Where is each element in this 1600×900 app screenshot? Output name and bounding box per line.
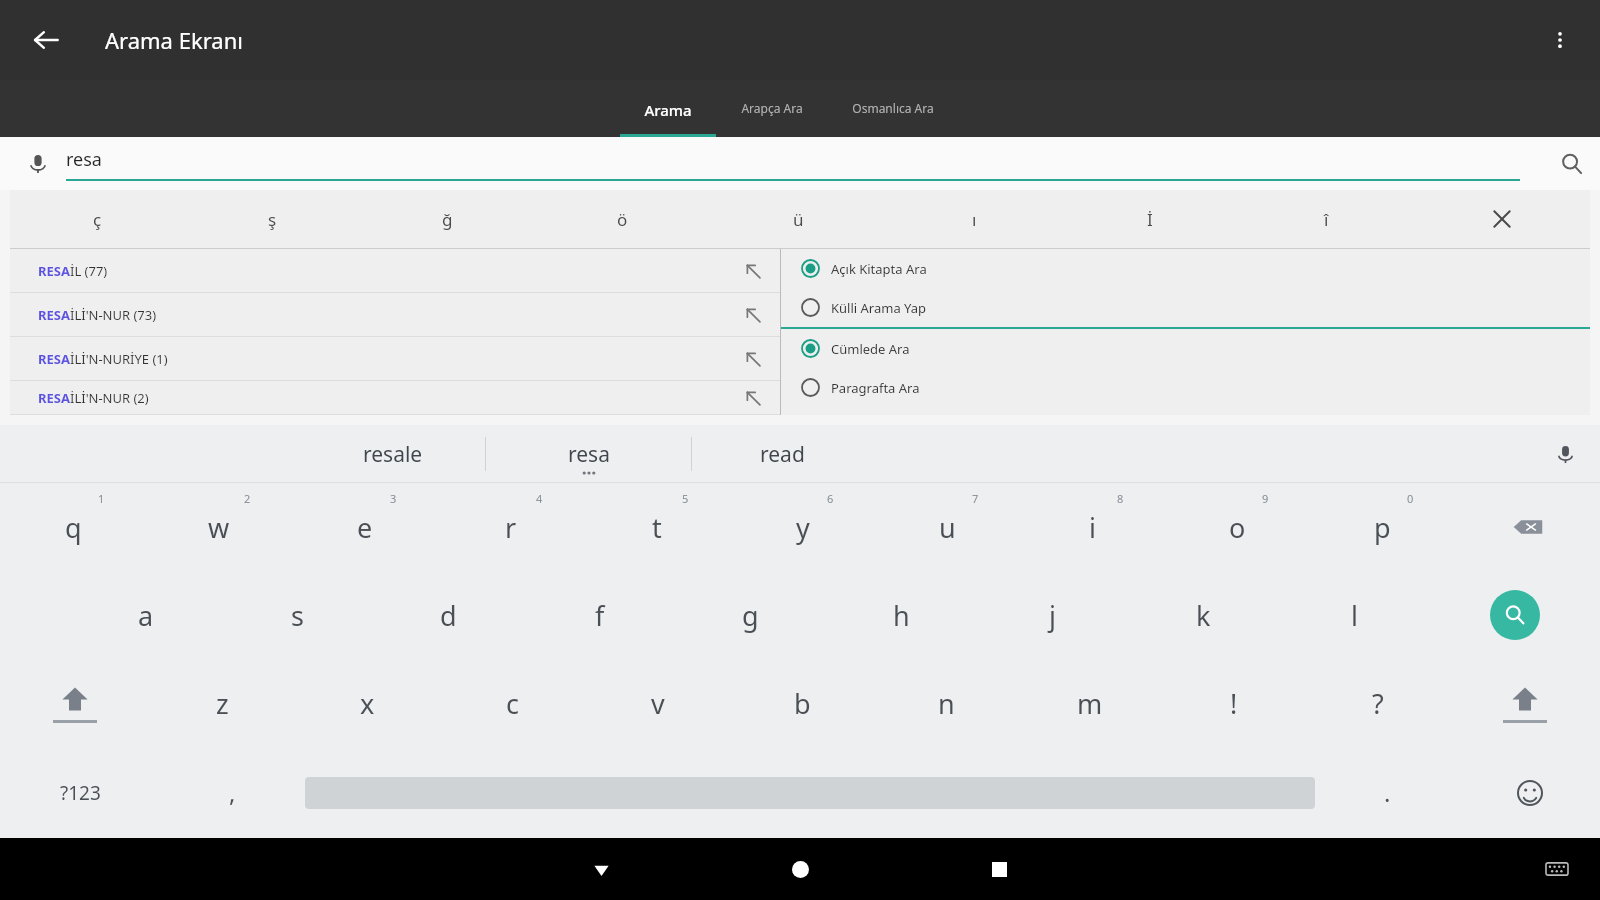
button[interactable]: a (70, 571, 222, 659)
button[interactable]: ? (1306, 659, 1450, 747)
button[interactable]: Voice search (20, 146, 56, 182)
staticText: İLİ'N-NURİYE (1) (70, 350, 168, 368)
button[interactable]: s (222, 571, 373, 659)
staticText: v (651, 685, 665, 722)
button[interactable]: î (1238, 190, 1414, 248)
staticText: RESA (38, 389, 70, 407)
staticText: e (357, 509, 373, 546)
button[interactable]: Shift (0, 659, 150, 747)
button[interactable]: Period (1315, 747, 1460, 838)
button[interactable]: Emoji (1460, 747, 1600, 838)
button[interactable]: y (730, 483, 875, 571)
button[interactable]: Arapça Ara (716, 80, 828, 137)
staticText: ç (93, 208, 102, 231)
button[interactable]: o (1165, 483, 1310, 571)
button[interactable]: Comma (160, 747, 305, 838)
staticText: c (506, 685, 519, 722)
staticText: n (938, 685, 955, 722)
button[interactable]: Change keyboard (1532, 844, 1582, 894)
button[interactable]: RESA (10, 249, 780, 292)
button[interactable]: k (1128, 571, 1279, 659)
button[interactable]: ö (535, 190, 710, 248)
staticText: f (595, 597, 605, 634)
button[interactable]: Shift (1450, 659, 1600, 747)
button[interactable]: Back (573, 841, 629, 897)
button[interactable]: h (826, 571, 977, 659)
button[interactable]: resale (300, 425, 485, 483)
staticText: read (760, 440, 805, 469)
button[interactable]: c (440, 659, 585, 747)
staticText: m (1077, 685, 1103, 722)
button[interactable]: ü (710, 190, 886, 248)
button[interactable]: d (373, 571, 524, 659)
button[interactable]: read (692, 425, 872, 483)
button[interactable]: resa (486, 425, 691, 483)
button[interactable]: j (977, 571, 1128, 659)
staticText: , (229, 776, 236, 809)
button[interactable]: b (730, 659, 874, 747)
button[interactable]: w (146, 483, 292, 571)
staticText: j (1049, 597, 1056, 634)
button[interactable]: f (524, 571, 675, 659)
staticText: Açık Kitapta Ara (831, 260, 927, 278)
staticText: resale (363, 440, 423, 469)
staticText: ı (972, 208, 977, 231)
button[interactable]: u (875, 483, 1020, 571)
button[interactable]: RESA (10, 381, 780, 414)
button[interactable]: l (1279, 571, 1430, 659)
staticText: İLİ'N-NUR (73) (70, 306, 157, 324)
button[interactable]: Recent apps (971, 841, 1027, 897)
button[interactable]: Paragrafta Ara (781, 368, 1590, 407)
button[interactable]: t (584, 483, 730, 571)
button[interactable]: ı (886, 190, 1062, 248)
button[interactable]: More options (1538, 18, 1582, 62)
staticText: ş (268, 208, 277, 231)
button[interactable]: Açık Kitapta Ara (781, 249, 1590, 288)
staticText: 6 (827, 491, 834, 506)
button[interactable]: Search (1430, 571, 1600, 659)
staticText: s (291, 597, 304, 634)
button[interactable]: Cümlede Ara (781, 329, 1590, 368)
button[interactable]: q (0, 483, 146, 571)
button[interactable]: Backspace (1455, 483, 1600, 571)
button[interactable]: Search (1552, 144, 1592, 184)
staticText: z (216, 685, 229, 722)
button[interactable]: Close (1414, 190, 1590, 248)
button[interactable]: z (150, 659, 295, 747)
button[interactable]: Arama (620, 80, 716, 137)
button[interactable]: ğ (360, 190, 535, 248)
button[interactable]: ş (185, 190, 360, 248)
button[interactable]: RESA (10, 337, 780, 380)
button[interactable]: RESA (10, 293, 780, 336)
staticText: u (939, 509, 956, 546)
staticText: ü (793, 208, 804, 231)
button[interactable]: Back (22, 16, 70, 64)
button[interactable]: Home (772, 841, 828, 897)
button[interactable]: Osmanlıca Ara (828, 80, 958, 137)
button[interactable]: Voice input (1530, 425, 1600, 483)
staticText: Cümlede Ara (831, 340, 910, 358)
staticText: 5 (682, 491, 689, 506)
button[interactable]: m (1018, 659, 1162, 747)
button[interactable]: x (295, 659, 440, 747)
staticText: 4 (536, 491, 543, 506)
button[interactable]: İ (1062, 190, 1238, 248)
button[interactable]: Space (305, 747, 1315, 838)
button[interactable]: p (1310, 483, 1455, 571)
staticText: . (1384, 776, 1391, 809)
button[interactable]: i (1020, 483, 1165, 571)
button[interactable]: ! (1162, 659, 1306, 747)
button[interactable]: Külli Arama Yap (781, 288, 1590, 327)
button[interactable]: ?123 (0, 747, 160, 838)
staticText: Arama (644, 100, 692, 120)
button[interactable]: r (438, 483, 584, 571)
button[interactable]: e (292, 483, 438, 571)
button[interactable]: v (585, 659, 730, 747)
staticText: 1 (98, 491, 105, 506)
button[interactable]: g (675, 571, 826, 659)
staticText: o (1229, 509, 1246, 546)
staticText: p (1374, 509, 1391, 546)
staticText: k (1196, 597, 1211, 634)
button[interactable]: n (874, 659, 1018, 747)
button[interactable]: ç (10, 190, 185, 248)
